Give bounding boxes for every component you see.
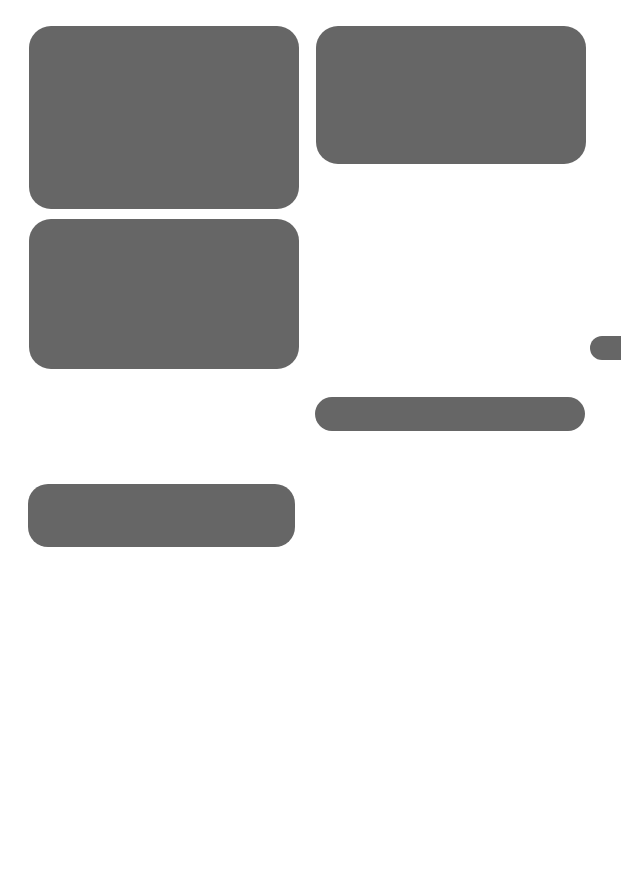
button[interactable]: Caption line: [315, 397, 585, 431]
button[interactable]: Secondary card: [316, 26, 586, 164]
button[interactable]: Third card: [29, 219, 299, 369]
button[interactable]: Featured card: [29, 26, 299, 209]
button[interactable]: Action button: [28, 484, 295, 547]
button[interactable]: Edge chip: [590, 336, 621, 360]
